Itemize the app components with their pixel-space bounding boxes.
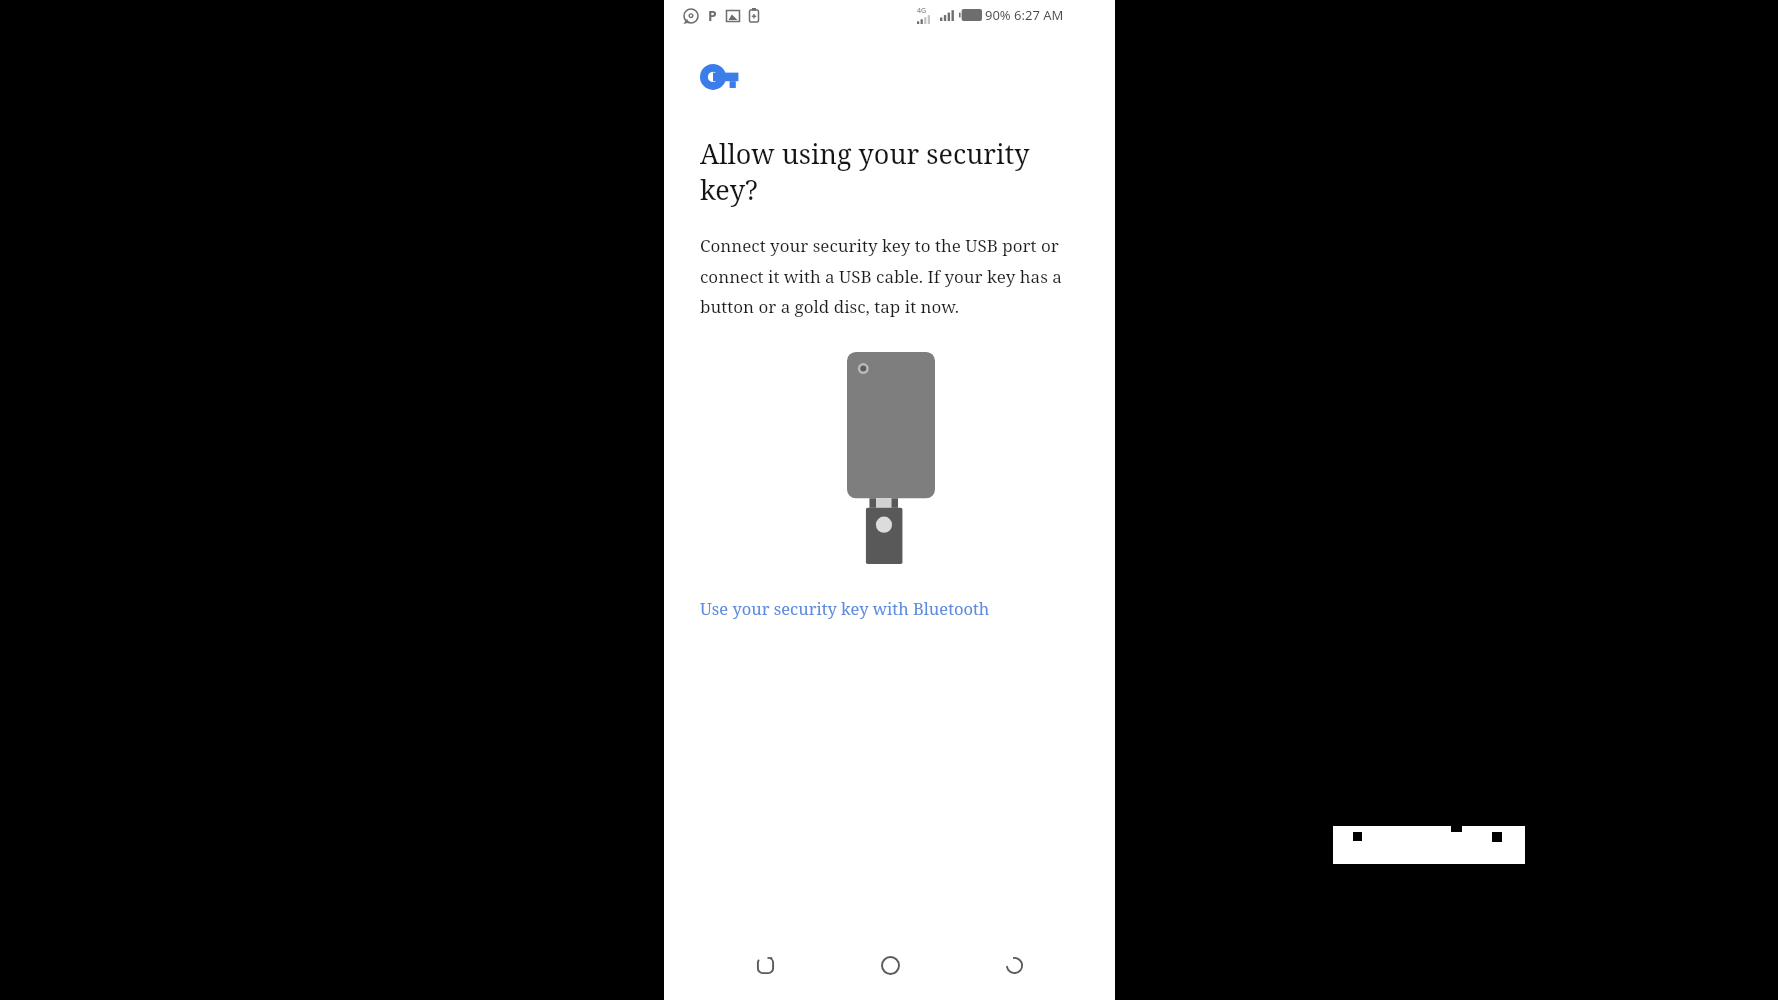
staticText: Allow using your security key? (700, 135, 1030, 208)
button[interactable]: Home (866, 941, 914, 989)
button[interactable]: Recents (741, 941, 789, 989)
staticText: Connect your security key to the USB por… (700, 234, 1062, 318)
button[interactable]: Use your security key with Bluetooth (700, 594, 990, 622)
staticText: 4G (917, 6, 927, 16)
button[interactable]: Back (990, 941, 1038, 989)
staticText: P (708, 6, 717, 25)
staticText: 90% 6:27 AM (985, 6, 1064, 24)
staticText: Use your security key with Bluetooth (700, 597, 990, 619)
